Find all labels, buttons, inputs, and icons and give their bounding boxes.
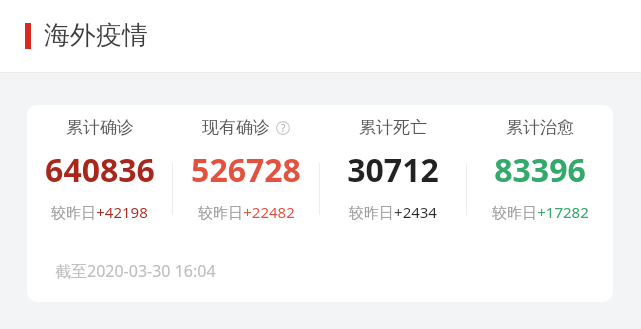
staticText: 83396 — [494, 148, 586, 192]
button[interactable]: 累计治愈 — [467, 117, 613, 222]
staticText: 较昨日+17282 — [492, 202, 589, 222]
button[interactable]: 累计确诊 — [27, 105, 613, 302]
staticText: 海外疫情 — [44, 19, 148, 52]
staticText: 30712 — [347, 148, 439, 192]
button[interactable]: 累计确诊 — [27, 117, 172, 222]
staticText: 累计治愈 — [506, 117, 574, 138]
staticText: 较昨日+42198 — [51, 202, 148, 222]
staticText: 较昨日+22482 — [198, 202, 295, 222]
staticText: 截至2020-03-30 16:04 — [55, 260, 216, 282]
staticText: ? — [281, 121, 286, 135]
staticText: 累计确诊 — [66, 117, 134, 138]
staticText: 较昨日+2434 — [349, 202, 437, 222]
button[interactable]: Help about 现有确诊 — [276, 121, 290, 135]
staticText: 现有确诊 — [202, 117, 270, 138]
button[interactable]: 现有确诊 — [173, 117, 319, 222]
staticText: 640836 — [45, 148, 155, 192]
staticText: 累计死亡 — [359, 117, 427, 138]
button[interactable]: 海外疫情 — [25, 19, 148, 52]
button[interactable]: 累计死亡 — [320, 117, 466, 222]
staticText: 526728 — [191, 148, 301, 192]
